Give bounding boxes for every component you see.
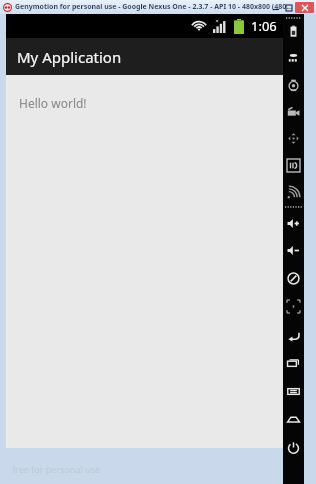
button[interactable]: Maximize <box>282 2 295 13</box>
button[interactable]: Video <box>284 104 303 118</box>
staticText: 1:06 <box>251 17 277 35</box>
button[interactable]: Volume up <box>284 216 303 230</box>
button[interactable]: Back <box>284 328 303 342</box>
button[interactable]: Fullscreen <box>284 299 303 313</box>
button[interactable]: Home <box>284 412 303 426</box>
button[interactable]: GPS <box>284 50 303 64</box>
staticText: free for personal use <box>12 463 101 475</box>
staticText: Hello world! <box>19 95 87 111</box>
staticText: Genymotion for personal use - Google Nex… <box>15 2 293 12</box>
button[interactable]: Rotate <box>284 271 303 285</box>
button[interactable]: Recents <box>284 356 303 370</box>
button[interactable]: Camera <box>284 78 303 92</box>
button[interactable]: Power <box>284 440 303 454</box>
button[interactable]: Volume down <box>284 243 303 257</box>
staticText: My Application <box>17 47 122 67</box>
button[interactable]: Identifiers <box>284 158 303 172</box>
button[interactable]: Close <box>295 2 314 13</box>
button[interactable]: Battery <box>284 24 303 38</box>
button[interactable]: Menu <box>284 384 303 398</box>
button[interactable]: Network <box>284 185 303 199</box>
button[interactable]: Minimize <box>269 2 282 13</box>
button[interactable]: Accelerometer <box>284 131 303 145</box>
